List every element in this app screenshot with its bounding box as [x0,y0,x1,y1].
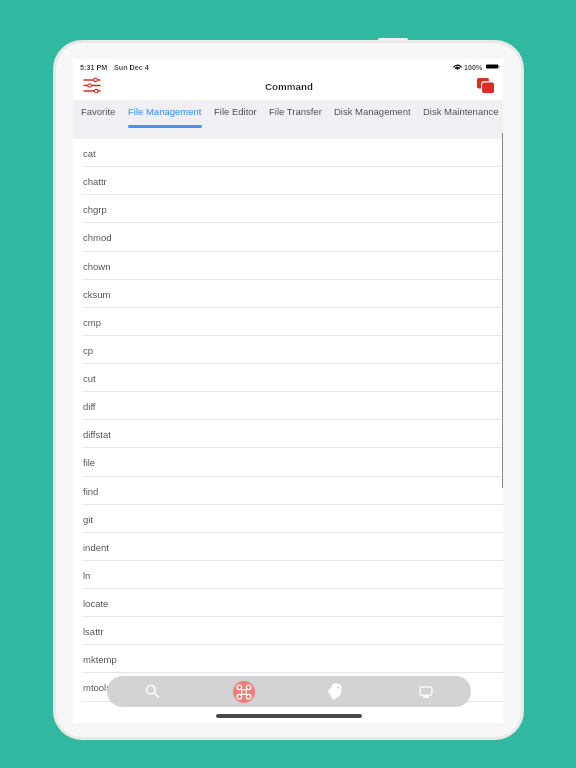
button[interactable]: chown [73,252,503,280]
button[interactable]: Tags [289,676,380,707]
staticText: Favorite [81,106,116,117]
button[interactable]: ln [73,561,503,589]
staticText: Sun Dec 4 [114,63,149,71]
staticText: mktemp [83,654,117,665]
staticText: Command [265,81,313,92]
button[interactable]: cp [73,336,503,364]
staticText: locate [83,598,109,609]
button[interactable]: find [73,477,503,505]
staticText: File Management [128,106,202,117]
staticText: File Editor [214,106,257,117]
button[interactable]: file [73,448,503,477]
button[interactable]: Favorite [75,100,122,139]
button[interactable]: File Transfer [263,100,328,139]
button[interactable]: indent [73,533,503,561]
button[interactable]: File Management [122,100,208,139]
staticText: lsattr [83,626,104,637]
button[interactable]: File Editor [208,100,263,139]
staticText: cp [83,345,94,356]
staticText: Disk Management [334,106,411,117]
staticText: Disk Maintenance [423,106,499,117]
staticText: cut [83,373,96,384]
staticText: chmod [83,232,112,243]
button[interactable]: Command [198,676,289,707]
button[interactable]: cksum [73,280,503,308]
staticText: ln [83,570,91,581]
button[interactable]: mtools [73,673,503,702]
button[interactable]: Tabs [474,74,496,96]
button[interactable]: chattr [73,167,503,195]
button[interactable]: diff [73,392,503,420]
staticText: cksum [83,289,111,300]
button[interactable]: cmp [73,308,503,336]
staticText: diffstat [83,429,111,440]
button[interactable]: chmod [73,223,503,252]
staticText: indent [83,542,109,553]
button[interactable]: lsattr [73,617,503,645]
button[interactable]: cut [73,364,503,392]
staticText: git [83,514,94,525]
button[interactable]: Disk Maintenance [417,100,503,139]
button[interactable]: diffstat [73,420,503,448]
staticText: chgrp [83,204,107,215]
button[interactable]: git [73,505,503,533]
button[interactable]: Search [107,676,198,707]
staticText: File Transfer [269,106,322,117]
button[interactable]: chgrp [73,195,503,223]
button[interactable]: cat [73,139,503,167]
staticText: 100% [464,63,483,71]
staticText: mtools [83,682,111,693]
button[interactable]: Disk Management [328,100,417,139]
staticText: 5:31 PM [80,63,108,71]
staticText: file [83,457,96,468]
button[interactable]: Filter [81,74,103,96]
staticText: cat [83,148,96,159]
staticText: cmp [83,317,101,328]
button[interactable]: locate [73,589,503,617]
button[interactable]: mktemp [73,645,503,673]
staticText: chown [83,261,111,272]
staticText: find [83,486,99,497]
staticText: diff [83,401,96,412]
button[interactable]: Display [380,676,471,707]
staticText: chattr [83,176,107,187]
